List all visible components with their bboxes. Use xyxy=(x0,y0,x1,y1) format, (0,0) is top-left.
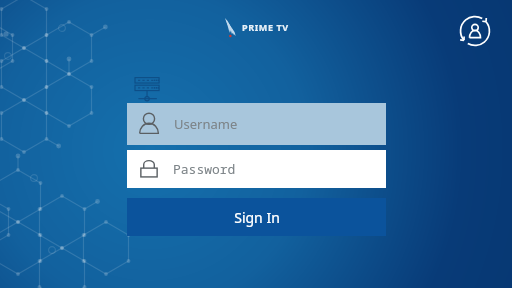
staticText: Sign In xyxy=(234,208,280,227)
staticText: Username xyxy=(174,115,238,133)
button[interactable]: Sign In xyxy=(127,198,386,236)
button[interactable]: Switch user xyxy=(452,8,498,54)
staticText: Password xyxy=(173,160,236,178)
button[interactable]: Username xyxy=(127,103,386,145)
button[interactable]: Password xyxy=(127,150,386,188)
staticText: PRIME TV xyxy=(242,21,289,33)
